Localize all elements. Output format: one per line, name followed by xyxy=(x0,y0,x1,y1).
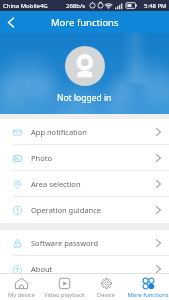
staticText: More functions xyxy=(51,16,119,29)
button[interactable]: Software password xyxy=(0,230,169,256)
button[interactable]: My device xyxy=(0,274,43,300)
staticText: My device xyxy=(8,291,35,299)
staticText: 5:48 PM xyxy=(144,2,167,10)
staticText: China Mobile4G xyxy=(3,2,48,10)
button[interactable]: Back xyxy=(0,11,20,33)
staticText: Software password xyxy=(31,238,99,248)
staticText: Video playback xyxy=(44,291,85,299)
staticText: More functions xyxy=(127,291,169,299)
button[interactable]: Photo xyxy=(0,145,169,171)
button[interactable]: Operation guidance xyxy=(0,197,169,223)
staticText: Device xyxy=(97,291,115,299)
staticText: Photo xyxy=(31,153,52,163)
staticText: 268b/s xyxy=(66,2,86,10)
button[interactable]: App notification xyxy=(0,119,169,145)
button[interactable]: About xyxy=(0,256,169,282)
button[interactable]: Avatar xyxy=(65,46,105,86)
button[interactable]: Device xyxy=(85,274,127,300)
staticText: Not logged in xyxy=(57,92,112,104)
button[interactable]: Video playback xyxy=(43,274,85,300)
button[interactable]: Area selection xyxy=(0,171,169,197)
button[interactable]: More functions xyxy=(127,274,169,300)
staticText: About xyxy=(31,264,53,274)
staticText: Operation guidance xyxy=(31,205,102,215)
staticText: App notification xyxy=(31,127,87,137)
staticText: Area selection xyxy=(31,179,81,189)
